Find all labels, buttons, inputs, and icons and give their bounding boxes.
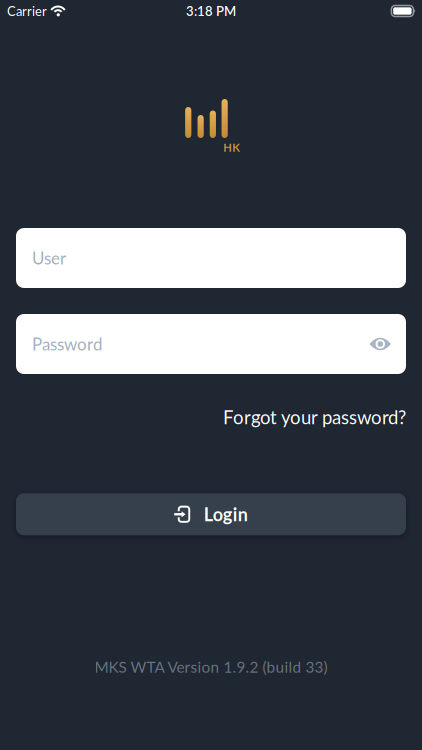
button[interactable]: Login xyxy=(0,493,422,535)
staticText: Password xyxy=(32,334,102,354)
staticText: MKS WTA Version 1.9.2 (build 33) xyxy=(94,658,327,676)
staticText: User xyxy=(32,248,66,268)
staticText: 3:18 PM xyxy=(186,3,236,19)
staticText: HK xyxy=(223,141,240,154)
button[interactable] xyxy=(369,337,391,351)
staticText: Forgot your password? xyxy=(223,406,406,428)
staticText: Login xyxy=(204,503,248,525)
staticText: Carrier xyxy=(7,3,47,19)
button[interactable]: Forgot your password? xyxy=(223,406,406,428)
